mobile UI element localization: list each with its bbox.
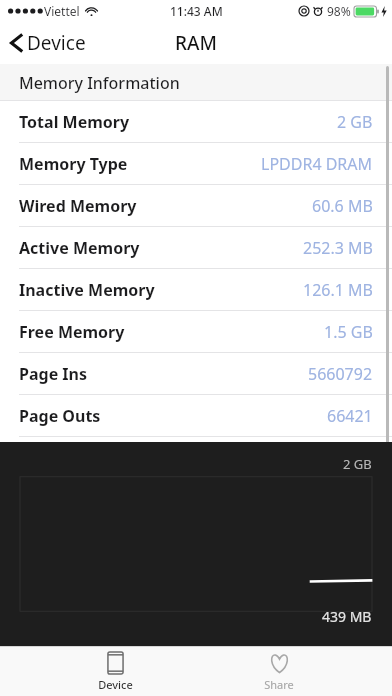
staticText: Free Memory bbox=[19, 321, 125, 343]
staticText: 5660792 bbox=[308, 363, 373, 385]
staticText: 1.5 GB bbox=[324, 321, 373, 343]
button[interactable]: Total Memory bbox=[0, 101, 392, 143]
staticText: 2 GB bbox=[337, 111, 373, 133]
staticText: 60.6 MB bbox=[312, 195, 373, 217]
button[interactable]: Device bbox=[0, 24, 96, 62]
staticText: Inactive Memory bbox=[19, 279, 155, 301]
staticText: Device bbox=[98, 677, 133, 692]
staticText: Device bbox=[27, 30, 86, 56]
staticText: 252.3 MB bbox=[303, 237, 373, 259]
staticText: 11:43 AM bbox=[170, 3, 223, 19]
staticText: Active Memory bbox=[19, 237, 140, 259]
staticText: 126.1 MB bbox=[303, 279, 373, 301]
button[interactable]: Inactive Memory bbox=[0, 269, 392, 311]
button[interactable]: Memory Type bbox=[0, 143, 392, 185]
staticText: Total Memory bbox=[19, 111, 130, 133]
staticText: Memory Type bbox=[19, 153, 128, 175]
staticText: Page Ins bbox=[19, 363, 88, 385]
staticText: 98% bbox=[327, 3, 351, 19]
staticText: LPDDR4 DRAM bbox=[261, 153, 373, 175]
staticText: Memory Information bbox=[19, 72, 180, 94]
button[interactable]: Device bbox=[64, 647, 167, 696]
staticText: 2 GB bbox=[343, 455, 372, 473]
staticText: Share bbox=[264, 677, 294, 692]
staticText: Wired Memory bbox=[19, 195, 137, 217]
button[interactable]: Active Memory bbox=[0, 227, 392, 269]
button[interactable]: Wired Memory bbox=[0, 185, 392, 227]
staticText: 66421 bbox=[327, 405, 373, 427]
button[interactable]: Page Ins bbox=[0, 353, 392, 395]
button[interactable]: Page Outs bbox=[0, 395, 392, 437]
staticText: Viettel bbox=[44, 3, 80, 19]
button[interactable]: Share bbox=[230, 647, 328, 696]
staticText: RAM bbox=[175, 30, 217, 56]
button[interactable]: Free Memory bbox=[0, 311, 392, 353]
staticText: Page Outs bbox=[19, 405, 101, 427]
staticText: 439 MB bbox=[322, 607, 372, 626]
